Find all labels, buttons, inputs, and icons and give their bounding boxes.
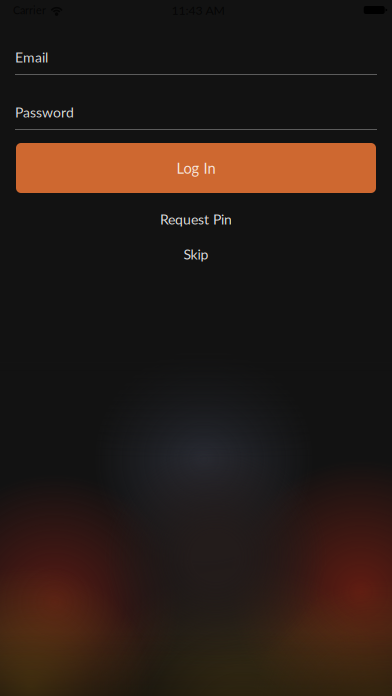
staticText: Skip: [183, 246, 208, 262]
staticText: Request Pin: [160, 211, 232, 227]
button[interactable]: Log In: [16, 143, 376, 193]
button[interactable]: Skip: [0, 242, 392, 266]
staticText: Email: [15, 49, 48, 65]
staticText: Carrier: [13, 4, 46, 16]
staticText: Log In: [176, 159, 215, 177]
staticText: 11:43 AM: [171, 3, 224, 17]
button[interactable]: Request Pin: [0, 207, 392, 231]
staticText: Password: [15, 104, 74, 120]
